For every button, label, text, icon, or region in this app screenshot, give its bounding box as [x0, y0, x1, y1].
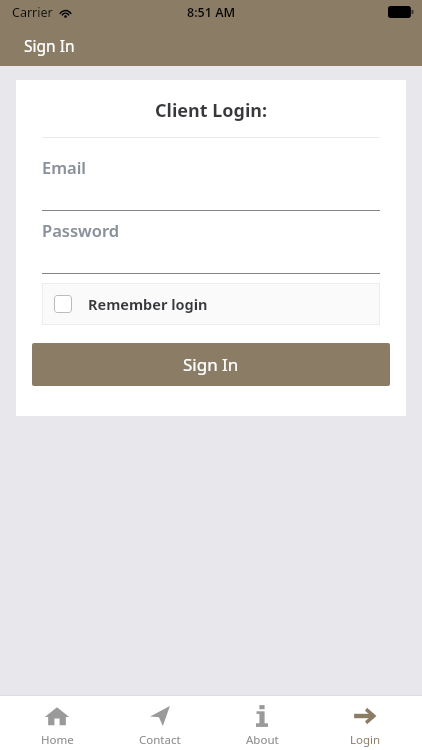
staticText: Client Login: — [16, 98, 406, 123]
staticText: Remember login — [88, 294, 208, 314]
staticText: 8:51 AM — [187, 4, 236, 21]
staticText: Sign In — [183, 353, 239, 376]
staticText: Home — [41, 732, 74, 748]
staticText: Carrier — [12, 4, 53, 21]
staticText: Email — [42, 156, 87, 178]
staticText: Sign In — [24, 35, 75, 56]
button[interactable]: Home — [11, 699, 103, 748]
button[interactable]: Contact — [114, 699, 206, 748]
staticText: About — [246, 732, 279, 748]
button[interactable]: About — [216, 699, 308, 748]
staticText: Login — [350, 732, 381, 748]
button[interactable]: Remember login — [42, 283, 380, 325]
button[interactable]: Sign In — [32, 343, 390, 386]
staticText: Contact — [139, 732, 181, 748]
button[interactable]: Login — [319, 699, 411, 748]
staticText: Password — [42, 219, 120, 241]
